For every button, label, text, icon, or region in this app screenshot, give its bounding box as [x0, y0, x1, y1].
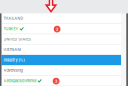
button[interactable]: Industry (%): [2, 55, 121, 65]
button[interactable]: VIETNAM: [2, 45, 121, 55]
staticText: VIETNAM: [4, 47, 21, 52]
staticText: THAILAND: [4, 16, 24, 21]
staticText: Aerospace/Defense: [4, 79, 37, 83]
staticText: 2: [56, 27, 58, 32]
button[interactable]: THAILAND: [2, 13, 121, 24]
staticText: Advertising: [4, 68, 23, 73]
button[interactable]: Advertising: [2, 65, 121, 76]
staticText: 3: [55, 79, 57, 84]
staticText: Industry (%): [4, 58, 25, 62]
button[interactable]: TURKEY: [2, 24, 121, 34]
staticText: TURKEY: [4, 27, 19, 31]
button[interactable]: UNITED STATES: [2, 34, 121, 45]
button[interactable]: Aerospace/Defense: [2, 76, 121, 86]
staticText: UNITED STATES: [4, 37, 31, 41]
